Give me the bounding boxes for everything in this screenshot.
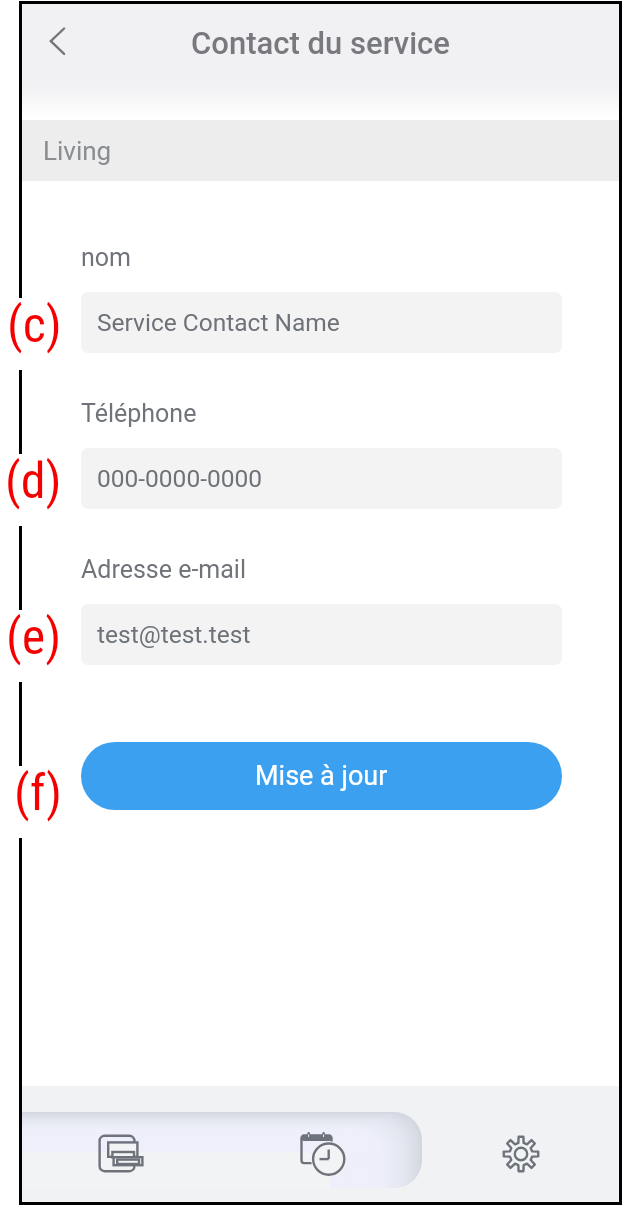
staticText: Téléphone	[81, 399, 197, 428]
button[interactable]: Print jobs	[22, 1086, 221, 1202]
staticText: 000-0000-0000	[97, 464, 263, 493]
button[interactable]: 000-0000-0000	[81, 448, 562, 509]
button[interactable]: Settings	[420, 1086, 619, 1202]
staticText: Service Contact Name	[97, 308, 340, 337]
staticText: (d)	[5, 452, 62, 511]
staticText: (e)	[6, 608, 62, 667]
button[interactable]: test@test.test	[81, 604, 562, 665]
staticText: nom	[81, 243, 131, 272]
button[interactable]: Mise à jour	[81, 742, 562, 810]
staticText: Adresse e-mail	[81, 555, 247, 584]
button[interactable]: Schedule	[221, 1086, 420, 1202]
staticText: (f)	[14, 764, 62, 823]
staticText: test@test.test	[97, 620, 251, 649]
staticText: Living	[43, 136, 112, 166]
staticText: Mise à jour	[255, 760, 388, 792]
staticText: Contact du service	[191, 25, 450, 61]
button[interactable]: Service Contact Name	[81, 292, 562, 353]
staticText: (c)	[7, 296, 62, 355]
button[interactable]: Back	[27, 11, 87, 71]
